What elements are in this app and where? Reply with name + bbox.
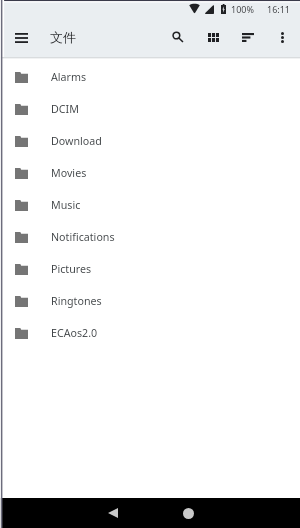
- staticText: 16:11: [267, 3, 291, 15]
- button[interactable]: Navigation menu: [5, 23, 38, 52]
- button[interactable]: Sort: [232, 20, 263, 55]
- button[interactable]: Alarms: [0, 61, 300, 93]
- button[interactable]: More options: [268, 20, 297, 55]
- button[interactable]: Search: [163, 20, 194, 55]
- staticText: Download: [51, 134, 102, 149]
- button[interactable]: Ringtones: [0, 285, 300, 317]
- staticText: 文件: [50, 29, 76, 45]
- staticText: 100%: [231, 3, 254, 15]
- button[interactable]: Home: [173, 498, 203, 528]
- staticText: ECAos2.0: [51, 326, 98, 341]
- staticText: Alarms: [51, 70, 87, 85]
- button[interactable]: Download: [0, 125, 300, 157]
- button[interactable]: Back: [98, 498, 128, 528]
- staticText: Music: [51, 198, 81, 213]
- staticText: DCIM: [51, 102, 79, 117]
- button[interactable]: Grid view: [197, 20, 230, 55]
- button[interactable]: ECAos2.0: [0, 317, 300, 349]
- button[interactable]: Notifications: [0, 221, 300, 253]
- button[interactable]: Movies: [0, 157, 300, 189]
- staticText: Movies: [51, 166, 87, 181]
- button[interactable]: DCIM: [0, 93, 300, 125]
- staticText: Ringtones: [51, 294, 102, 309]
- staticText: Notifications: [51, 230, 115, 245]
- button[interactable]: Music: [0, 189, 300, 221]
- button[interactable]: Pictures: [0, 253, 300, 285]
- staticText: Pictures: [51, 262, 92, 277]
